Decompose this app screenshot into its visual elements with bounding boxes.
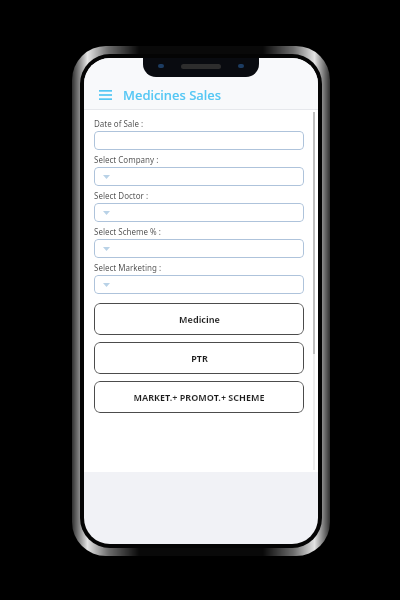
- button[interactable]: [94, 131, 304, 150]
- staticText: Select Company :: [94, 154, 159, 165]
- staticText: Medicines Sales: [123, 86, 222, 104]
- button[interactable]: [94, 275, 304, 294]
- button[interactable]: Open navigation menu: [95, 85, 115, 105]
- staticText: Select Scheme % :: [94, 226, 161, 237]
- staticText: Medicine: [179, 313, 220, 325]
- button[interactable]: [94, 167, 304, 186]
- staticText: Select Marketing :: [94, 262, 162, 273]
- staticText: PTR: [191, 352, 208, 364]
- button[interactable]: MARKET.+ PROMOT.+ SCHEME: [94, 381, 304, 413]
- staticText: Select Doctor :: [94, 190, 149, 201]
- button[interactable]: PTR: [94, 342, 304, 374]
- staticText: MARKET.+ PROMOT.+ SCHEME: [133, 391, 265, 403]
- button[interactable]: Medicine: [94, 303, 304, 335]
- button[interactable]: [94, 239, 304, 258]
- button[interactable]: [94, 203, 304, 222]
- staticText: Date of Sale :: [94, 118, 144, 129]
